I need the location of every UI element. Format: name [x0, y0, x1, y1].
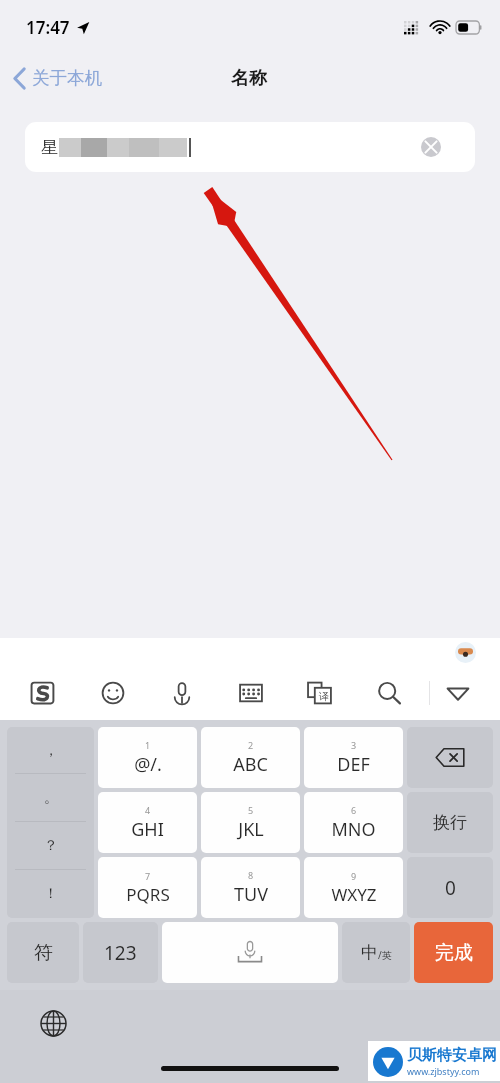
button[interactable]: 换行 [407, 792, 493, 853]
button[interactable]: ！ [7, 870, 94, 918]
button[interactable]: 符 [7, 922, 79, 983]
button[interactable]: 0 [407, 857, 493, 918]
staticText: 换行 [433, 812, 467, 833]
button[interactable]: Search [354, 666, 423, 720]
button[interactable]: 中 [342, 922, 410, 983]
button[interactable]: 4 [98, 792, 197, 853]
button[interactable]: 7 [98, 857, 197, 918]
staticText: 符 [34, 941, 53, 965]
staticText: 中 [361, 942, 378, 963]
button[interactable]: Voice input [147, 666, 216, 720]
button[interactable]: Sticker [455, 642, 476, 663]
staticText: 123 [104, 940, 137, 966]
button[interactable]: Emoji [78, 666, 147, 720]
staticText: PQRS [126, 883, 170, 906]
staticText: GHI [131, 817, 164, 842]
staticText: 9 [351, 870, 357, 882]
staticText: 4 [145, 804, 151, 816]
button[interactable]: 。 [7, 774, 94, 822]
staticText: 5 [248, 804, 254, 816]
staticText: MNO [331, 817, 376, 842]
button[interactable]: Delete [407, 727, 493, 788]
staticText: 贝斯特安卓网 [407, 1046, 497, 1065]
button[interactable]: 1 [98, 727, 197, 788]
staticText: 6 [351, 804, 357, 816]
staticText: www.zjbstyy.com [407, 1065, 480, 1077]
button[interactable]: Change keyboard language [38, 1008, 68, 1038]
staticText: 星 [41, 137, 58, 158]
staticText: 名称 [231, 67, 267, 90]
staticText: 关于本机 [32, 67, 102, 89]
staticText: 1 [145, 739, 151, 751]
button[interactable]: Hide keyboard [423, 666, 492, 720]
button[interactable]: 6 [304, 792, 403, 853]
button[interactable]: ？ [7, 822, 94, 870]
staticText: JKL [238, 817, 264, 842]
button[interactable]: Translate [285, 666, 354, 720]
button[interactable]: 8 [201, 857, 300, 918]
staticText: DEF [337, 752, 370, 777]
staticText: TUV [234, 882, 268, 907]
button[interactable]: 完成 [414, 922, 493, 983]
staticText: 完成 [435, 941, 473, 965]
staticText: /英 [378, 948, 392, 962]
button[interactable]: Sogou input [8, 666, 78, 720]
staticText: WXYZ [331, 883, 377, 906]
staticText: 0 [445, 875, 456, 901]
staticText: 3 [351, 739, 357, 751]
staticText: 2 [248, 739, 254, 751]
button[interactable]: 星 [25, 122, 475, 172]
button[interactable]: 3 [304, 727, 403, 788]
staticText: 17:47 [26, 16, 70, 39]
button[interactable]: Clear text [419, 135, 443, 159]
button[interactable]: 2 [201, 727, 300, 788]
staticText: ？ [44, 837, 58, 855]
staticText: 。 [44, 789, 58, 807]
button[interactable]: ， [7, 727, 94, 774]
staticText: @/. [134, 752, 162, 777]
button[interactable]: 5 [201, 792, 300, 853]
button[interactable]: 123 [83, 922, 158, 983]
staticText: 译 [319, 690, 329, 703]
staticText: 8 [248, 869, 254, 881]
button[interactable]: Space [162, 922, 338, 983]
button[interactable]: 9 [304, 857, 403, 918]
staticText: ， [44, 742, 58, 760]
button[interactable]: 关于本机 [0, 61, 112, 95]
staticText: 7 [145, 870, 151, 882]
staticText: ABC [233, 752, 268, 777]
button[interactable]: Keyboard layout [216, 666, 285, 720]
staticText: ！ [44, 885, 58, 903]
